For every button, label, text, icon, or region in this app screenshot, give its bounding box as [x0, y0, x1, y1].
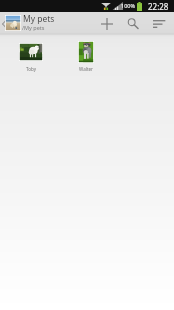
- button[interactable]: Navigate up: [0, 12, 94, 35]
- button[interactable]: Sort: [147, 12, 172, 35]
- button[interactable]: Search: [122, 12, 143, 35]
- staticText: /My pets: [22, 24, 45, 31]
- staticText: 22:28: [148, 1, 169, 12]
- staticText: My pets: [23, 13, 55, 25]
- staticText: 100%: [121, 2, 136, 9]
- button[interactable]: Toby: [3, 39, 59, 75]
- staticText: Walter: [79, 66, 93, 72]
- button[interactable]: Walter: [58, 39, 114, 75]
- button[interactable]: Add: [96, 12, 117, 35]
- staticText: Toby: [26, 66, 36, 72]
